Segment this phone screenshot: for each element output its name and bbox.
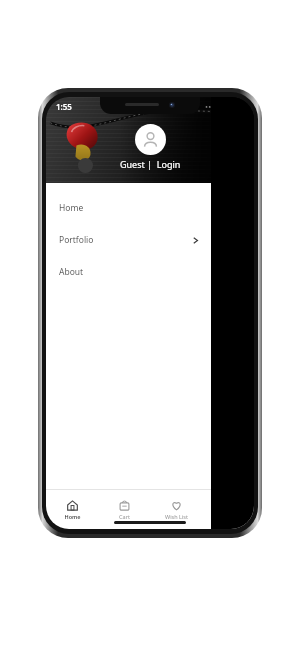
staticText: Wish List: [165, 513, 188, 520]
button[interactable]: Home: [46, 192, 211, 224]
button[interactable]: Wish List: [150, 490, 202, 529]
staticText: Home: [64, 513, 81, 520]
staticText: Portfolio: [59, 234, 94, 246]
staticText: Guest | Login: [120, 158, 181, 170]
button[interactable]: Cart: [98, 490, 150, 529]
staticText: Cart: [119, 513, 130, 520]
button[interactable]: About: [46, 256, 211, 288]
button[interactable]: Home: [46, 490, 98, 529]
button[interactable]: My Account: [202, 490, 254, 529]
button[interactable]: Portfolio: [46, 224, 211, 256]
button[interactable]: Guest | Login: [120, 158, 181, 170]
button[interactable]: [211, 97, 254, 529]
button[interactable]: Profile: [135, 124, 166, 155]
staticText: 1:55: [56, 101, 72, 112]
staticText: About: [59, 266, 84, 278]
staticText: Home: [59, 202, 84, 214]
